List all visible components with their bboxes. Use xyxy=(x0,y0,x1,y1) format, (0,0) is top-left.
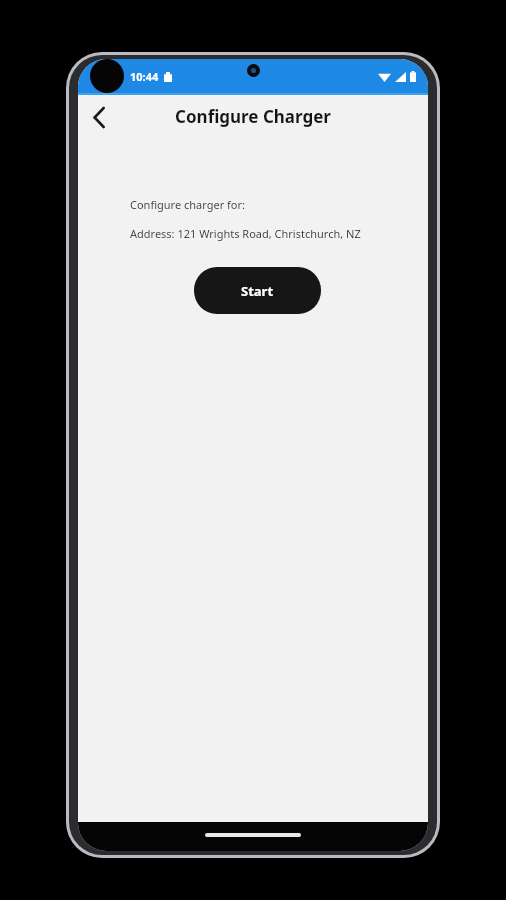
staticText: Configure charger for: xyxy=(130,197,245,212)
staticText: Start xyxy=(241,282,274,300)
staticText: Configure Charger xyxy=(175,105,331,128)
staticText: 10:44 xyxy=(130,69,159,84)
staticText: Address: 121 Wrights Road, Christchurch,… xyxy=(130,226,361,241)
button[interactable]: Back xyxy=(78,96,120,138)
button[interactable]: Start xyxy=(194,267,321,314)
